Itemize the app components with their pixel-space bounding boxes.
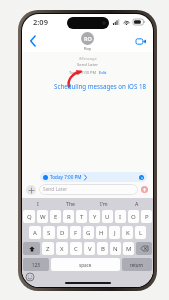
button[interactable]: G [83, 226, 94, 239]
staticText: iMessage [79, 56, 97, 61]
staticText: X [60, 245, 64, 253]
button[interactable]: B [97, 242, 108, 255]
staticText: Z [46, 245, 50, 253]
staticText: Send Later [43, 186, 68, 193]
button[interactable]: Today 7:00 PM [40, 172, 147, 182]
button[interactable]: The [54, 198, 87, 209]
button[interactable]: R [63, 210, 74, 223]
staticText: N [113, 245, 118, 253]
staticText: C [74, 245, 78, 253]
button[interactable]: N [110, 242, 121, 255]
button[interactable]: Send Later [39, 184, 138, 195]
staticText: G [86, 229, 91, 237]
button[interactable]: return [122, 258, 152, 271]
staticText: U [105, 213, 110, 221]
staticText: I [37, 200, 39, 207]
button[interactable]: S [43, 226, 55, 239]
staticText: 123 [32, 262, 40, 268]
staticText: W [40, 213, 46, 221]
button[interactable]: A [29, 226, 41, 239]
button[interactable]: U [102, 210, 113, 223]
button[interactable]: space [51, 258, 120, 271]
button[interactable]: Cancel scheduled message [139, 175, 144, 180]
staticText: H [99, 229, 104, 237]
staticText: A [135, 200, 139, 207]
button[interactable]: E [50, 210, 61, 223]
button[interactable]: Send [140, 185, 149, 194]
staticText: I'm [100, 200, 108, 207]
staticText: Edit [99, 70, 107, 75]
button[interactable]: 123 [23, 258, 49, 271]
button[interactable]: X [56, 242, 68, 255]
button[interactable]: FaceTime video call [134, 34, 148, 48]
button[interactable]: M [123, 242, 134, 255]
staticText: return [130, 262, 144, 268]
staticText: V [88, 245, 92, 253]
button[interactable]: Shift [23, 242, 40, 255]
staticText: Q [27, 213, 32, 221]
button[interactable]: O [128, 210, 139, 223]
button[interactable]: Y [89, 210, 100, 223]
button[interactable]: I [22, 198, 54, 209]
staticText: J [114, 229, 116, 237]
button[interactable]: Q [23, 210, 35, 223]
staticText: P [145, 213, 149, 221]
button[interactable]: L [135, 226, 146, 239]
staticText: F [74, 229, 78, 237]
staticText: space [79, 262, 92, 268]
button[interactable]: I'm [87, 198, 120, 209]
staticText: D [60, 229, 65, 237]
staticText: Today 7:00 PM [69, 70, 99, 75]
button[interactable]: H [96, 226, 107, 239]
staticText: R [67, 213, 71, 221]
staticText: 2:09 [33, 17, 48, 27]
staticText: Today 7:00 PM [50, 174, 82, 180]
button[interactable]: C [70, 242, 82, 255]
button[interactable]: F [70, 226, 81, 239]
staticText: E [54, 213, 58, 221]
button[interactable]: P [141, 210, 152, 223]
button[interactable]: Emoji keyboard [25, 272, 34, 281]
button[interactable]: W [37, 210, 48, 223]
button[interactable]: RO [81, 32, 94, 52]
staticText: L [139, 229, 143, 237]
button[interactable]: A [120, 198, 153, 209]
staticText: RO [84, 35, 92, 42]
staticText: I [119, 213, 122, 221]
staticText: K [126, 229, 130, 237]
button[interactable]: V [84, 242, 95, 255]
staticText: Roy [84, 46, 92, 52]
staticText: A [33, 229, 37, 237]
staticText: M [126, 245, 132, 253]
button[interactable]: K [122, 226, 133, 239]
staticText: T [80, 213, 84, 221]
staticText: Scheduling messages on iOS 18 [54, 82, 146, 90]
button[interactable]: Backspace [136, 242, 152, 255]
button[interactable]: Add attachment [26, 185, 36, 195]
button[interactable]: I [115, 210, 126, 223]
staticText: S [47, 229, 51, 237]
staticText: The [66, 200, 76, 207]
staticText: Y [93, 213, 97, 221]
button[interactable]: Z [42, 242, 54, 255]
button[interactable]: T [76, 210, 87, 223]
button[interactable]: J [109, 226, 120, 239]
button[interactable]: Back [26, 34, 40, 48]
staticText: Send Later [77, 62, 99, 68]
button[interactable]: D [57, 226, 68, 239]
staticText: O [131, 213, 136, 221]
staticText: B [101, 245, 105, 253]
